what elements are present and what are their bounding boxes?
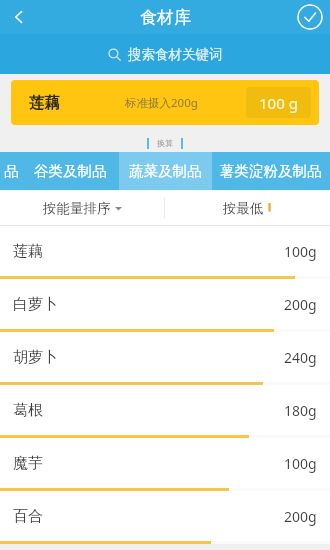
staticText: 薯类淀粉及制品 xyxy=(220,162,322,180)
staticText: 魔芋 xyxy=(13,454,43,473)
staticText: 200g xyxy=(284,507,317,526)
staticText: 葛根 xyxy=(13,401,43,420)
staticText: 莲藕 xyxy=(29,93,60,113)
button[interactable]: 莲藕 xyxy=(11,80,319,125)
button[interactable]: 搜索食材关键词 xyxy=(0,34,330,74)
button[interactable]: 按最低 xyxy=(165,190,330,226)
button[interactable]: 胡萝卜 xyxy=(0,332,330,385)
staticText: 搜索食材关键词 xyxy=(128,46,223,63)
staticText: 按能量排序 xyxy=(43,200,111,217)
staticText: 胡萝卜 xyxy=(13,348,58,367)
button[interactable]: 葛根 xyxy=(0,385,330,438)
staticText: 按最低 xyxy=(223,200,264,217)
button[interactable]: 莲藕 xyxy=(0,226,330,279)
button[interactable]: 品 xyxy=(0,152,22,190)
staticText: 100 g xyxy=(259,93,298,113)
staticText: 100g xyxy=(284,454,317,473)
button[interactable]: 百合 xyxy=(0,491,330,544)
staticText: 240g xyxy=(284,348,317,367)
staticText: 莲藕 xyxy=(13,242,43,261)
button[interactable]: 蔬菜及制品 xyxy=(119,152,212,190)
button[interactable]: 薯类淀粉及制品 xyxy=(212,152,330,190)
staticText: 食材库 xyxy=(140,7,191,28)
button[interactable]: 按能量排序 xyxy=(0,190,164,226)
button[interactable]: 谷类及制品 xyxy=(22,152,119,190)
staticText: 换算 xyxy=(157,138,173,148)
staticText: 200g xyxy=(284,295,317,314)
button[interactable]: Confirm xyxy=(290,0,330,34)
staticText: 标准摄入200g xyxy=(125,95,198,111)
staticText: 蔬菜及制品 xyxy=(129,162,202,180)
staticText: 品 xyxy=(4,162,19,180)
staticText: 百合 xyxy=(13,507,43,526)
button[interactable]: 魔芋 xyxy=(0,438,330,491)
staticText: 100g xyxy=(284,242,317,261)
button[interactable]: 白萝卜 xyxy=(0,279,330,332)
button[interactable]: 100 g xyxy=(246,87,311,118)
staticText: 白萝卜 xyxy=(13,295,58,314)
staticText: 180g xyxy=(284,401,317,420)
button[interactable]: Back xyxy=(0,0,38,34)
staticText: 谷类及制品 xyxy=(34,162,107,180)
